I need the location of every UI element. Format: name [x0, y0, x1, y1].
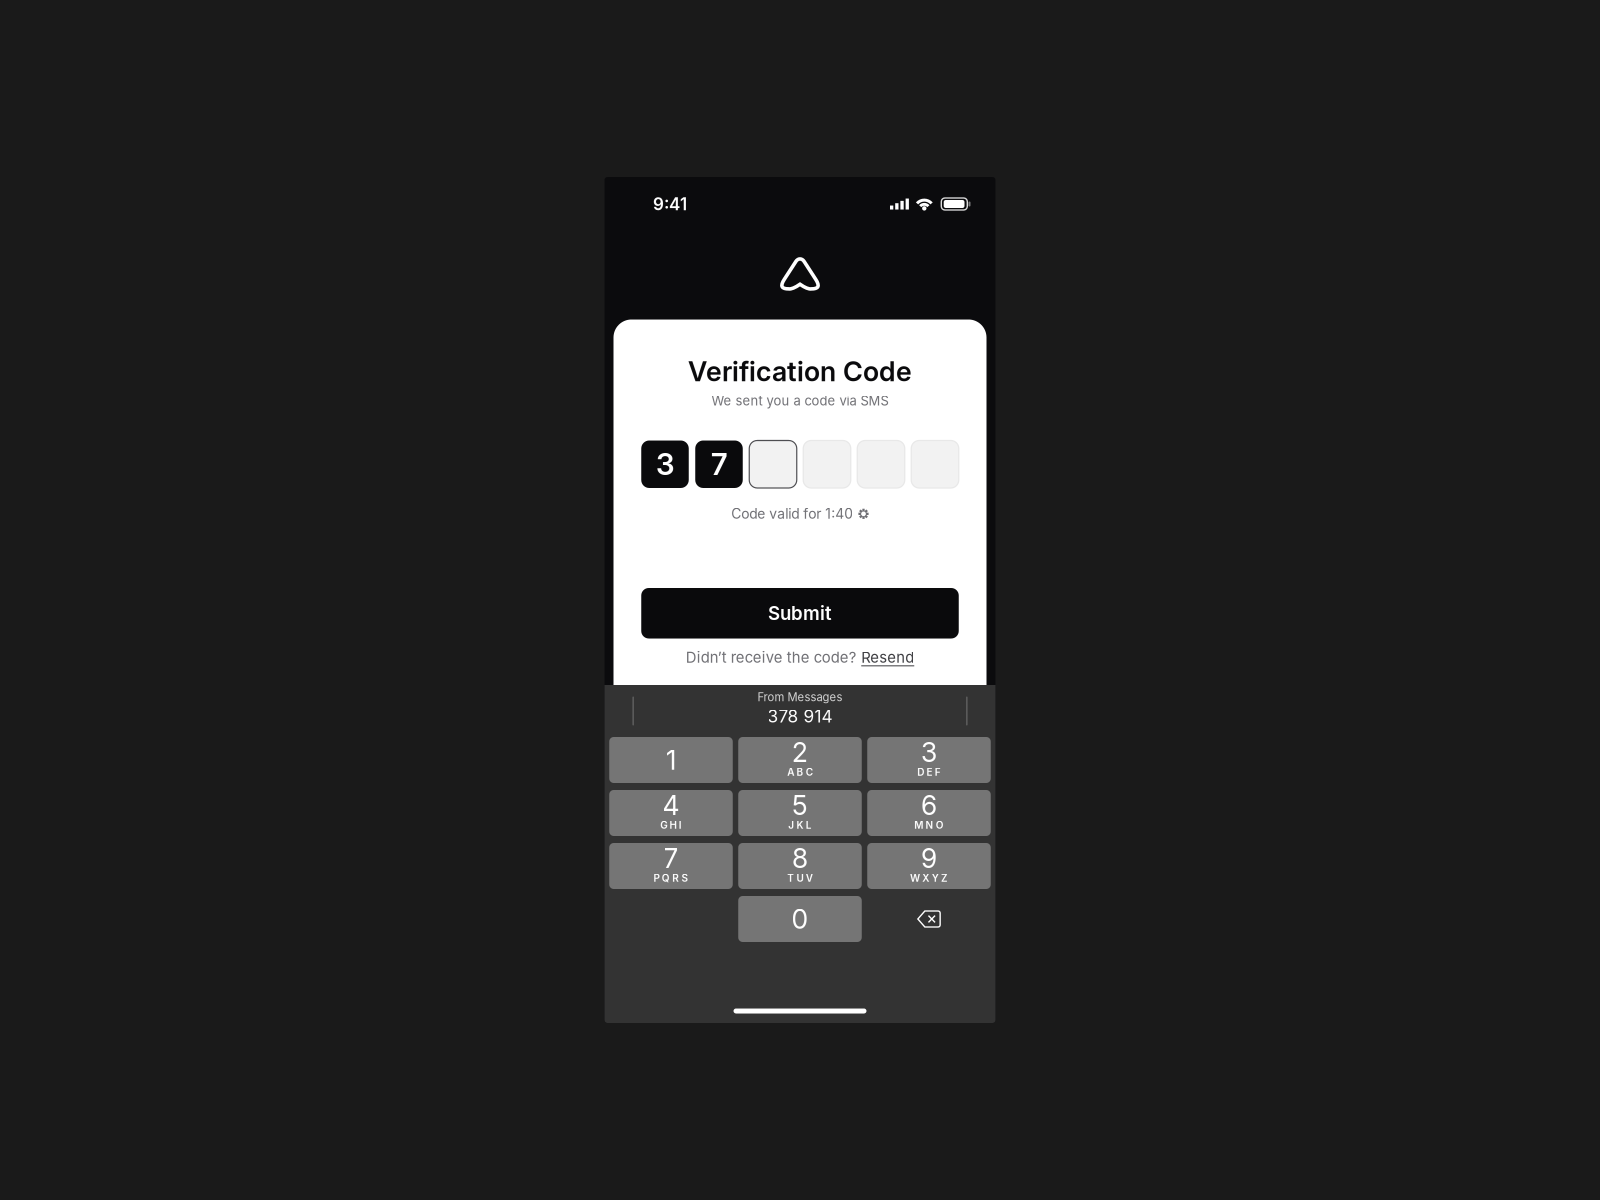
staticText: DEF: [917, 766, 941, 778]
button[interactable]: 5: [738, 790, 862, 836]
staticText: 0: [791, 903, 808, 935]
staticText: 3: [656, 446, 674, 482]
button[interactable]: Delete: [867, 896, 991, 942]
staticText: 9:41: [653, 194, 687, 214]
staticText: ABC: [787, 766, 813, 778]
staticText: Submit: [768, 602, 832, 624]
staticText: TUV: [787, 872, 813, 884]
staticText: GHI: [660, 819, 682, 831]
staticText: 7: [711, 446, 727, 482]
button[interactable]: 8: [738, 843, 862, 889]
staticText: Didn’t receive the code?: [686, 648, 857, 666]
staticText: 1: [666, 744, 676, 776]
staticText: 378 914: [767, 706, 832, 727]
staticText: 4: [662, 789, 679, 821]
staticText: Resend: [861, 648, 914, 666]
button[interactable]: 7: [695, 440, 743, 488]
staticText: 2: [792, 736, 808, 768]
staticText: 3: [921, 736, 937, 768]
staticText: Verification Code: [688, 355, 912, 388]
button[interactable]: 7: [609, 843, 733, 889]
staticText: WXYZ: [910, 872, 948, 884]
staticText: Code valid for 1:40: [731, 505, 853, 522]
button[interactable]: 2: [738, 737, 862, 783]
button[interactable]: Digit 3, active: [749, 440, 797, 488]
button[interactable]: 3: [641, 440, 689, 488]
staticText: MNO: [914, 819, 944, 831]
button[interactable]: 0: [738, 896, 862, 942]
button[interactable]: 6: [867, 790, 991, 836]
staticText: 5: [792, 789, 808, 821]
button[interactable]: 1: [609, 737, 733, 783]
staticText: PQRS: [654, 872, 688, 884]
staticText: JKL: [788, 819, 812, 831]
button[interactable]: 4: [609, 790, 733, 836]
button[interactable]: Resend: [861, 648, 914, 666]
staticText: 8: [792, 842, 808, 874]
staticText: 9: [921, 842, 937, 874]
button[interactable]: Submit: [641, 588, 959, 638]
staticText: 7: [663, 842, 678, 874]
staticText: We sent you a code via SMS: [711, 393, 888, 409]
button[interactable]: 9: [867, 843, 991, 889]
staticText: 6: [921, 789, 937, 821]
button[interactable]: 3: [867, 737, 991, 783]
staticText: From Messages: [757, 690, 842, 704]
